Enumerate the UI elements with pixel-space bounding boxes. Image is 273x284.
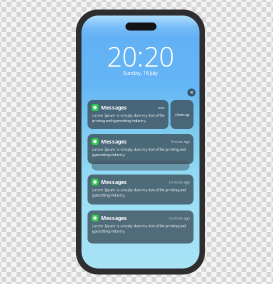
staticText: ✕ xyxy=(189,89,193,96)
button[interactable]: Messages xyxy=(87,174,193,204)
staticText: Messages xyxy=(101,104,127,111)
staticText: clean up xyxy=(175,112,189,117)
button[interactable]: clean up xyxy=(170,100,193,129)
button[interactable]: Messages xyxy=(87,100,168,129)
staticText: 3 mins ago xyxy=(170,139,189,144)
staticText: Lorem Ipsum is simply dummy text of the … xyxy=(91,147,185,157)
staticText: Messages xyxy=(101,178,127,186)
staticText: Messages xyxy=(101,214,127,222)
staticText: Lorem Ipsum is simply dummy text of the … xyxy=(91,187,185,198)
staticText: Lorem Ipsum is simply dummy text of the … xyxy=(91,113,164,123)
button[interactable]: Messages xyxy=(87,210,193,243)
staticText: Lorem Ipsum is simply dummy text of the … xyxy=(91,223,185,234)
button[interactable]: Messages xyxy=(87,134,193,164)
staticText: Sunday, 16 July xyxy=(123,69,158,77)
button[interactable]: Clear all notifications xyxy=(187,88,195,96)
staticText: 20:20 xyxy=(107,39,174,74)
staticText: 15 mins ago xyxy=(168,215,189,221)
staticText: 13 mins ago xyxy=(168,179,189,185)
staticText: now xyxy=(157,105,164,110)
staticText: Messages xyxy=(101,138,127,145)
